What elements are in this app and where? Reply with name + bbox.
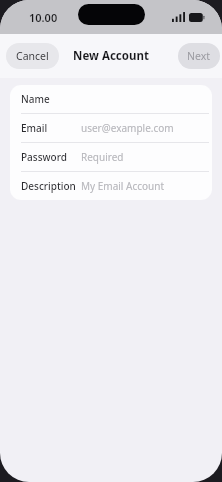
staticText: Next: [187, 49, 211, 63]
staticText: Required: [81, 150, 124, 164]
button[interactable]: Next: [178, 43, 220, 69]
button[interactable]: Password: [10, 143, 212, 171]
staticText: Description: [21, 179, 76, 193]
staticText: New Account: [73, 48, 149, 64]
button[interactable]: Cancel: [6, 43, 59, 69]
button[interactable]: Name: [10, 85, 212, 113]
staticText: Name: [21, 92, 50, 106]
button[interactable]: Description: [10, 172, 212, 200]
staticText: user@example.com: [81, 121, 174, 135]
staticText: Password: [21, 150, 67, 164]
staticText: Email: [21, 121, 48, 135]
staticText: Cancel: [16, 49, 49, 63]
button[interactable]: Email: [10, 114, 212, 142]
staticText: 10.00: [29, 10, 58, 25]
staticText: My Email Account: [81, 179, 165, 193]
